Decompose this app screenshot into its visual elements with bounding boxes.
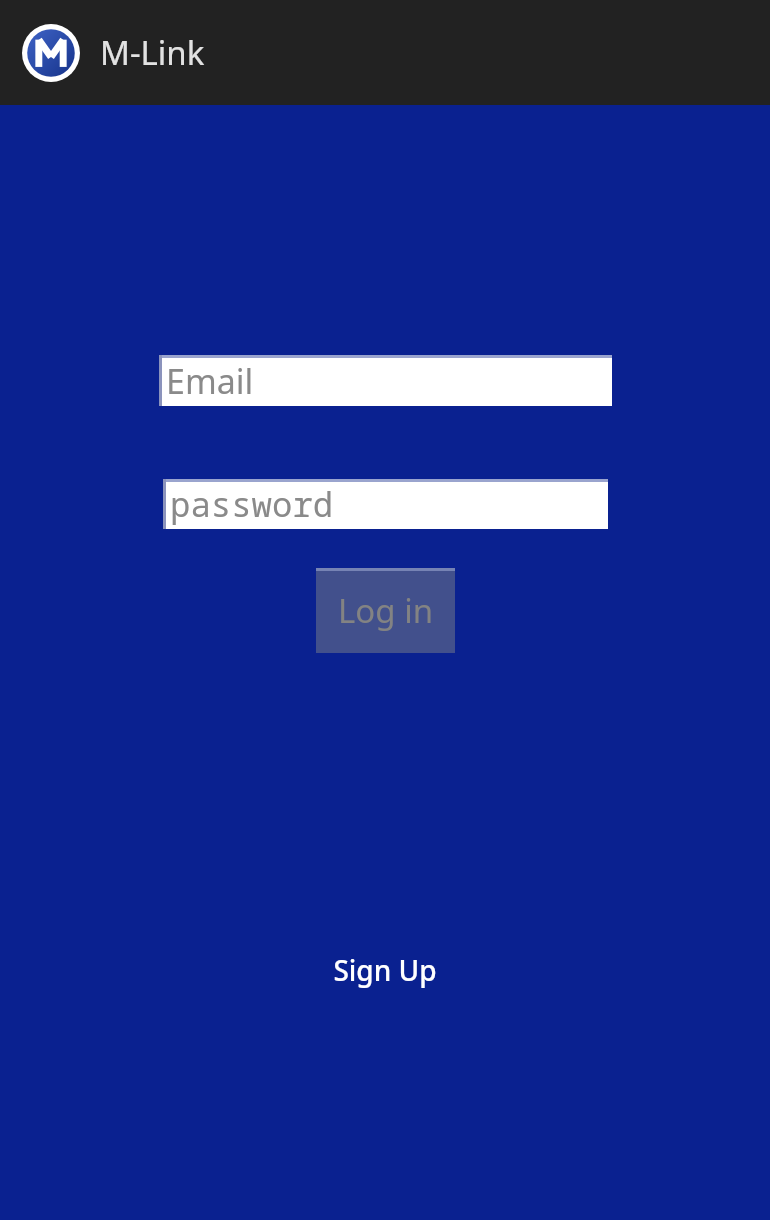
staticText: password: [170, 481, 334, 527]
staticText: M-Link: [100, 30, 205, 75]
button[interactable]: password: [163, 479, 608, 529]
staticText: Sign Up: [333, 951, 437, 989]
button[interactable]: Email: [159, 355, 612, 406]
button[interactable]: Log in: [316, 568, 455, 653]
button[interactable]: Sign Up: [319, 945, 451, 995]
staticText: Log in: [338, 588, 434, 633]
staticText: Email: [166, 358, 254, 404]
other: M-Link logo: [22, 24, 80, 82]
